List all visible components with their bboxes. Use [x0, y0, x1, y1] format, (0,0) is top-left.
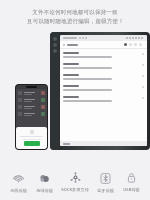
button[interactable]: [18, 91, 45, 95]
other: 局域传输: [39, 173, 50, 184]
other: SOCK多屏互传: [70, 172, 81, 183]
button[interactable]: [18, 98, 45, 102]
staticText: 文件不论何时何地都可以保持一致: [32, 9, 118, 16]
button[interactable]: [63, 74, 144, 80]
button[interactable]: [18, 112, 45, 116]
button[interactable]: USB传输: [122, 171, 141, 193]
button[interactable]: 无线传输: [9, 172, 28, 193]
button[interactable]: [63, 85, 144, 91]
staticText: SOCK多屏互传: [61, 187, 89, 193]
staticText: 蓝牙传输: [97, 188, 114, 193]
button[interactable]: [63, 63, 144, 69]
staticText: 无线传输: [10, 188, 27, 193]
button[interactable]: 蓝牙传输: [96, 172, 115, 193]
staticText: USB传输: [123, 187, 140, 193]
button[interactable]: [63, 96, 144, 102]
other: USB传输: [126, 172, 137, 183]
button[interactable]: 发送: [24, 141, 40, 146]
button[interactable]: SOCK多屏互传: [60, 171, 90, 193]
staticText: 局域传输: [36, 188, 53, 193]
other: 无线传输: [13, 173, 24, 184]
button[interactable]: [63, 52, 144, 58]
staticText: 且可以随时随地进行编辑，超级方便！: [27, 18, 124, 25]
button[interactable]: [18, 105, 45, 109]
button[interactable]: 局域传输: [35, 172, 54, 193]
other: 蓝牙传输: [100, 173, 111, 184]
